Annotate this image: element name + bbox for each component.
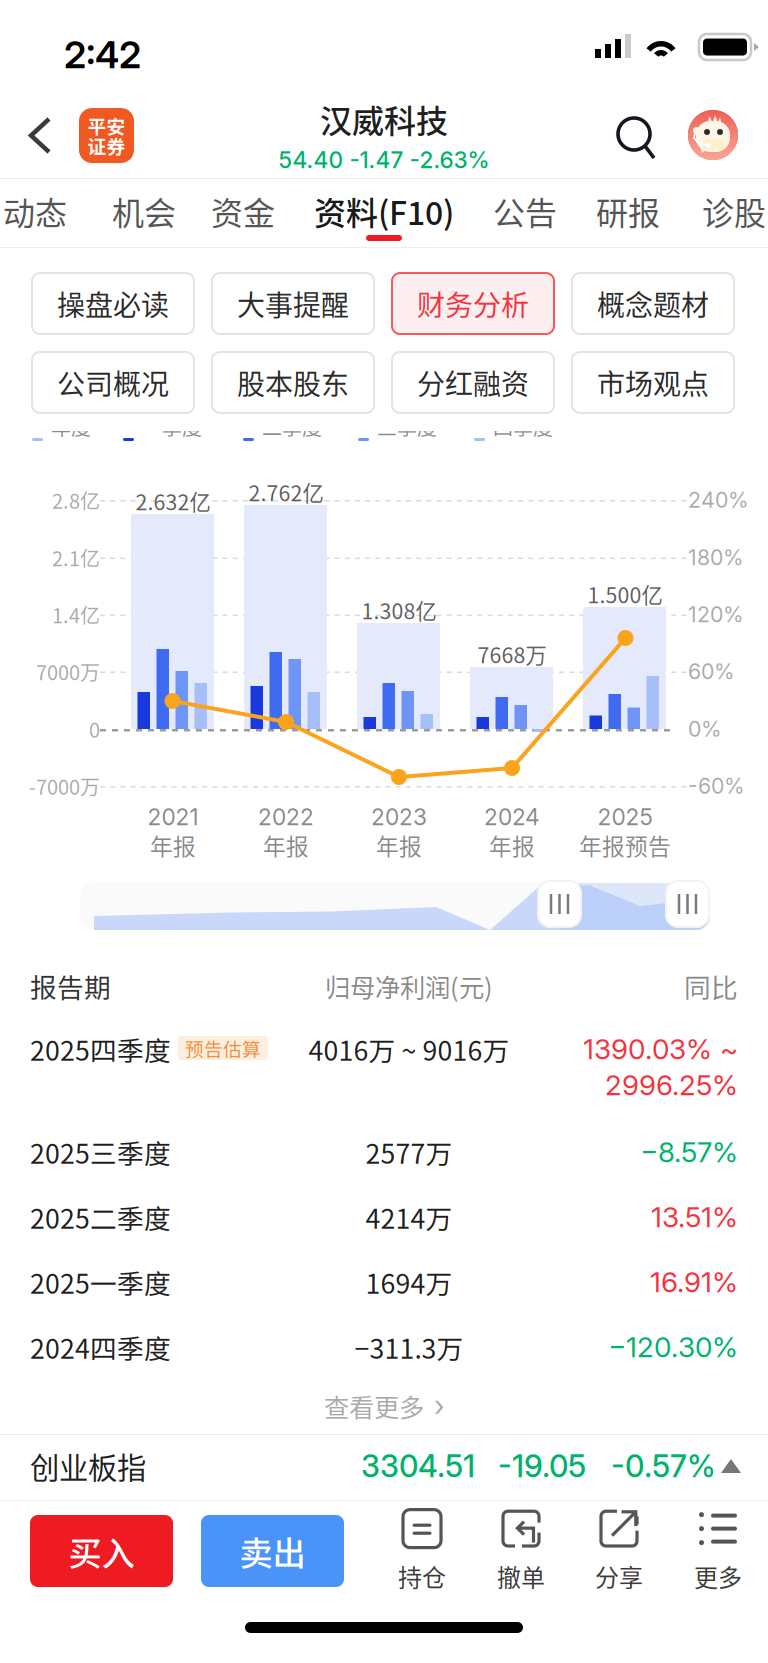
staticText: 研报 bbox=[596, 188, 660, 234]
staticText: 2025四季度 bbox=[30, 1030, 171, 1068]
staticText: -0.57% bbox=[611, 1447, 716, 1484]
staticText: 2024 bbox=[484, 803, 540, 831]
staticText: 公告 bbox=[493, 188, 557, 234]
staticText: 2022 bbox=[258, 803, 314, 831]
staticText: 4214万 bbox=[365, 1198, 452, 1236]
button[interactable]: 概念题材 bbox=[572, 273, 734, 334]
staticText: 财务分析 bbox=[417, 283, 529, 324]
staticText: 资料(F10) bbox=[314, 188, 454, 234]
staticText: 平安 bbox=[87, 112, 125, 139]
staticText: 撤单 bbox=[497, 1559, 545, 1593]
staticText: −311.3万 bbox=[354, 1328, 463, 1366]
staticText: 年报 bbox=[150, 829, 196, 861]
staticText: 1390.03% ~ bbox=[583, 1032, 738, 1066]
staticText: 240% bbox=[688, 487, 749, 513]
button[interactable]: 机会 bbox=[74, 179, 214, 247]
staticText: 公司概况 bbox=[57, 362, 169, 403]
button[interactable]: 操盘必读 bbox=[32, 273, 194, 334]
staticText: 7668万 bbox=[477, 639, 546, 669]
staticText: 查看更多 bbox=[324, 1388, 424, 1424]
button[interactable]: 客服 bbox=[688, 110, 738, 160]
button[interactable]: 研报 bbox=[558, 179, 698, 247]
staticText: 2.632亿 bbox=[135, 486, 210, 516]
button[interactable]: 资料(F10) bbox=[314, 179, 454, 247]
button[interactable]: 公告 bbox=[455, 179, 595, 247]
button[interactable]: 大事提醒 bbox=[212, 273, 374, 334]
staticText: 资金 bbox=[211, 188, 275, 234]
button[interactable]: 动态 bbox=[0, 179, 105, 247]
staticText: 2025一季度 bbox=[30, 1263, 171, 1301]
button[interactable]: 股本股东 bbox=[212, 352, 374, 413]
staticText: 2.1亿 bbox=[52, 543, 100, 572]
staticText: 60% bbox=[688, 659, 735, 684]
staticText: 7000万 bbox=[36, 657, 100, 686]
button[interactable]: 卖出 bbox=[201, 1515, 344, 1587]
staticText: −8.57% bbox=[640, 1135, 738, 1169]
staticText: 预告估算 bbox=[185, 1034, 261, 1061]
staticText: 0% bbox=[688, 716, 722, 742]
staticText: -7000万 bbox=[29, 771, 100, 800]
button[interactable]: 持仓 bbox=[372, 1508, 472, 1594]
staticText: 2023 bbox=[371, 803, 427, 831]
staticText: 同比 bbox=[684, 967, 738, 1005]
staticText: 16.91% bbox=[650, 1265, 738, 1299]
button[interactable]: 公司概况 bbox=[32, 352, 194, 413]
staticText: 2577万 bbox=[365, 1133, 452, 1171]
staticText: 1694万 bbox=[365, 1263, 452, 1301]
staticText: 年报 bbox=[376, 829, 422, 861]
staticText: 买入 bbox=[68, 1527, 134, 1575]
staticText: 2996.25% bbox=[605, 1068, 738, 1102]
staticText: 2:42 bbox=[64, 32, 141, 77]
button[interactable]: 分红融资 bbox=[392, 352, 554, 413]
staticText: 2.762亿 bbox=[248, 477, 323, 507]
staticText: 年报预告 bbox=[579, 829, 671, 861]
staticText: 股本股东 bbox=[237, 362, 349, 403]
staticText: 汉威科技 bbox=[320, 96, 448, 142]
button[interactable]: 市场观点 bbox=[572, 352, 734, 413]
button[interactable]: 诊股 bbox=[664, 179, 768, 247]
staticText: 归母净利润(元) bbox=[325, 968, 493, 1004]
staticText: 年报 bbox=[489, 829, 535, 861]
staticText: 更多 bbox=[694, 1559, 742, 1593]
button[interactable]: 撤单 bbox=[471, 1508, 571, 1594]
staticText: 操盘必读 bbox=[57, 283, 169, 324]
staticText: 4016万 ~ 9016万 bbox=[308, 1030, 509, 1068]
staticText: 54.40 -1.47 -2.63% bbox=[278, 146, 489, 174]
staticText: 报告期 bbox=[30, 967, 111, 1005]
staticText: 2025三季度 bbox=[30, 1133, 171, 1171]
staticText: 年报 bbox=[263, 829, 309, 861]
staticText: 2025二季度 bbox=[30, 1198, 171, 1236]
staticText: 持仓 bbox=[398, 1559, 446, 1593]
staticText: 1.500亿 bbox=[587, 579, 662, 609]
button[interactable]: 分享 bbox=[569, 1508, 669, 1594]
staticText: -19.05 bbox=[498, 1447, 586, 1484]
staticText: 3304.51 bbox=[361, 1447, 475, 1484]
staticText: 120% bbox=[688, 602, 744, 627]
staticText: 2024四季度 bbox=[30, 1328, 171, 1366]
button[interactable]: 资金 bbox=[173, 179, 313, 247]
staticText: 卖出 bbox=[239, 1527, 305, 1575]
staticText: 2025 bbox=[597, 803, 652, 831]
button[interactable]: 更多 bbox=[668, 1508, 768, 1594]
staticText: 1.4亿 bbox=[52, 600, 100, 629]
staticText: 分享 bbox=[595, 1559, 643, 1593]
staticText: 创业板指 bbox=[30, 1445, 146, 1487]
staticText: 2021 bbox=[147, 803, 198, 831]
button[interactable]: 搜索 bbox=[604, 104, 664, 168]
staticText: 分红融资 bbox=[417, 362, 529, 403]
button[interactable]: 返回 bbox=[2, 97, 66, 175]
staticText: 证券 bbox=[87, 132, 125, 159]
staticText: 0 bbox=[89, 714, 100, 743]
staticText: -60% bbox=[688, 773, 745, 799]
staticText: 市场观点 bbox=[597, 362, 709, 403]
button[interactable]: 买入 bbox=[30, 1515, 173, 1587]
staticText: › bbox=[434, 1388, 444, 1424]
staticText: 诊股 bbox=[702, 188, 766, 234]
staticText: 2.8亿 bbox=[52, 485, 100, 514]
button[interactable]: 查看更多 bbox=[0, 1381, 768, 1431]
button[interactable]: 平安证券 bbox=[79, 108, 134, 163]
staticText: 三季度 bbox=[377, 412, 437, 441]
button[interactable]: 财务分析 bbox=[392, 273, 554, 334]
staticText: 一季度 bbox=[142, 412, 202, 441]
staticText: 动态 bbox=[3, 188, 67, 234]
